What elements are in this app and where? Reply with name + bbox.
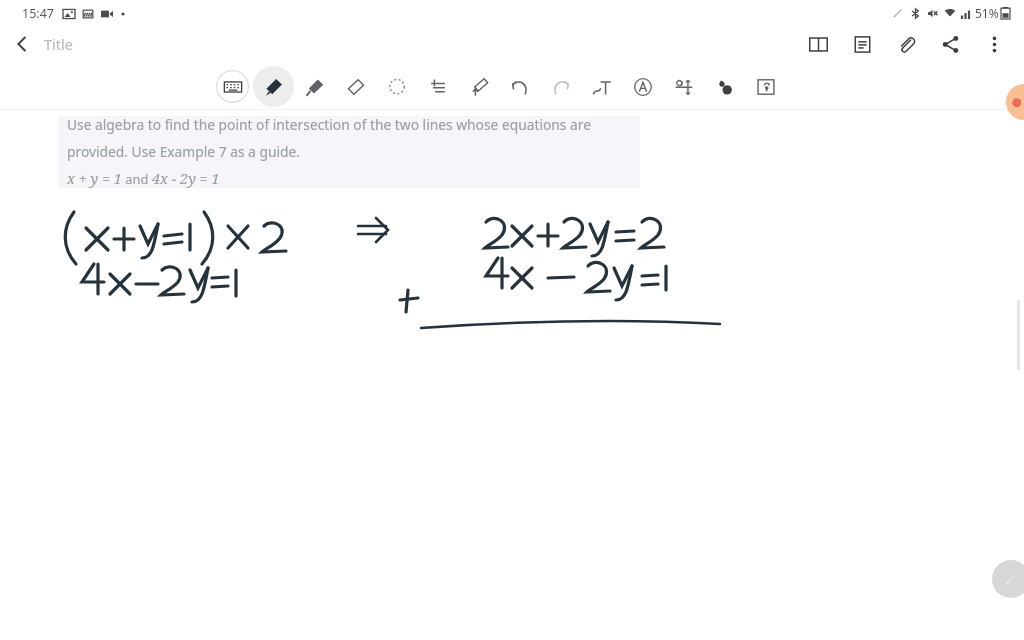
button[interactable]: Pen xyxy=(253,66,294,107)
button[interactable]: Highlighter xyxy=(294,66,335,107)
button[interactable]: Share xyxy=(928,26,972,62)
button[interactable]: Redo xyxy=(540,66,581,107)
button[interactable]: Book xyxy=(796,26,840,62)
button[interactable]: Shape xyxy=(622,66,663,107)
button[interactable]: Notes xyxy=(840,26,884,62)
button[interactable]: Undo xyxy=(499,66,540,107)
staticText: Title xyxy=(44,34,73,54)
button[interactable]: Keyboard xyxy=(212,66,253,107)
button[interactable]: Text recognition xyxy=(581,66,622,107)
button[interactable]: Edit xyxy=(992,560,1024,598)
button[interactable]: Attach xyxy=(884,26,928,62)
staticText: provided. Use Example 7 as a guide. xyxy=(67,142,300,161)
button[interactable]: Lock xyxy=(745,66,786,107)
button[interactable]: Align xyxy=(417,66,458,107)
button[interactable]: Color xyxy=(704,66,745,107)
button[interactable]: Eraser xyxy=(335,66,376,107)
staticText: 4x − 2y = 1 xyxy=(152,168,220,188)
staticText: x + y = 1 xyxy=(67,168,122,188)
button[interactable]: Back xyxy=(0,26,44,62)
button[interactable]: Text spacing xyxy=(663,66,704,107)
staticText: and xyxy=(122,170,152,187)
staticText: Use algebra to find the point of interse… xyxy=(67,115,592,134)
button[interactable]: Pen settings xyxy=(458,66,499,107)
staticText: 51% xyxy=(975,5,999,21)
staticText: 15:47 xyxy=(22,5,54,22)
button[interactable]: Lasso select xyxy=(376,66,417,107)
button[interactable]: More options xyxy=(972,26,1016,62)
